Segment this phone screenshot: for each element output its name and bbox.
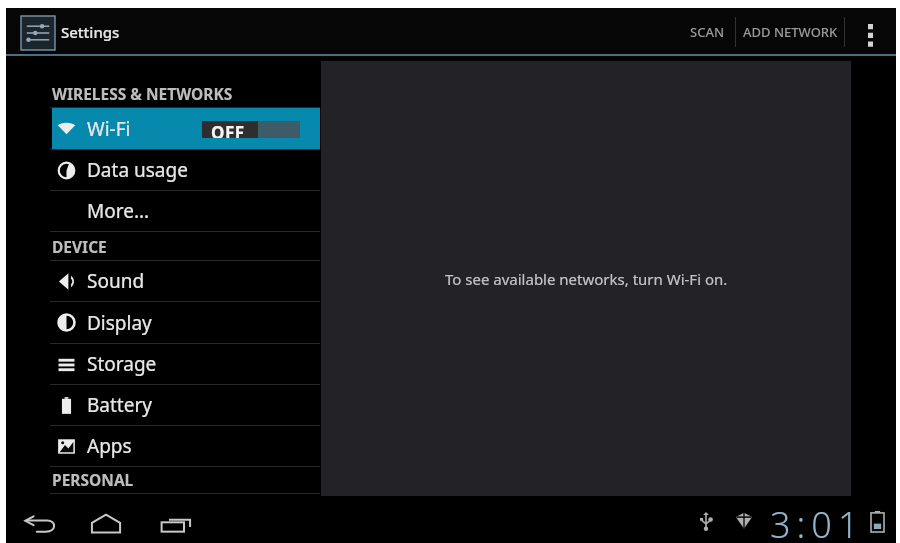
staticText: Data usage xyxy=(87,157,188,183)
staticText: To see available networks, turn Wi-Fi on… xyxy=(445,269,728,289)
staticText: More... xyxy=(87,198,150,224)
staticText: WIRELESS & NETWORKS xyxy=(52,83,233,104)
button[interactable]: More... xyxy=(52,191,320,231)
staticText: ADD NETWORK xyxy=(743,23,838,41)
staticText: Apps xyxy=(87,433,132,459)
staticText: Settings xyxy=(61,22,120,42)
staticText: SCAN xyxy=(690,23,725,41)
button[interactable]: System status xyxy=(694,497,899,543)
button[interactable]: Back xyxy=(15,497,65,543)
button[interactable]: ADD NETWORK xyxy=(736,8,844,56)
button[interactable]: Sound xyxy=(52,261,320,301)
button[interactable]: Storage xyxy=(52,344,320,384)
button[interactable]: Settings home xyxy=(21,16,55,50)
staticText: 3:01 xyxy=(770,500,865,543)
staticText: PERSONAL xyxy=(52,469,134,490)
button[interactable]: Battery xyxy=(52,385,320,425)
button[interactable]: Recent apps xyxy=(151,497,201,543)
staticText: Sound xyxy=(87,268,145,294)
button[interactable]: Home xyxy=(81,497,131,543)
button[interactable]: More options xyxy=(845,8,896,56)
button[interactable]: Apps xyxy=(52,426,320,466)
staticText: OFF xyxy=(211,121,245,138)
button[interactable]: Data usage xyxy=(52,150,320,190)
staticText: Display xyxy=(87,310,152,336)
button[interactable]: Display xyxy=(52,302,320,343)
button[interactable]: SCAN xyxy=(679,8,735,56)
button[interactable]: Wi-Fi on off toggle xyxy=(202,121,300,138)
button[interactable]: Wi-Fi xyxy=(52,108,320,149)
staticText: Battery xyxy=(87,392,152,418)
staticText: Wi-Fi xyxy=(87,116,131,142)
staticText: Storage xyxy=(87,351,157,377)
staticText: DEVICE xyxy=(52,236,107,257)
